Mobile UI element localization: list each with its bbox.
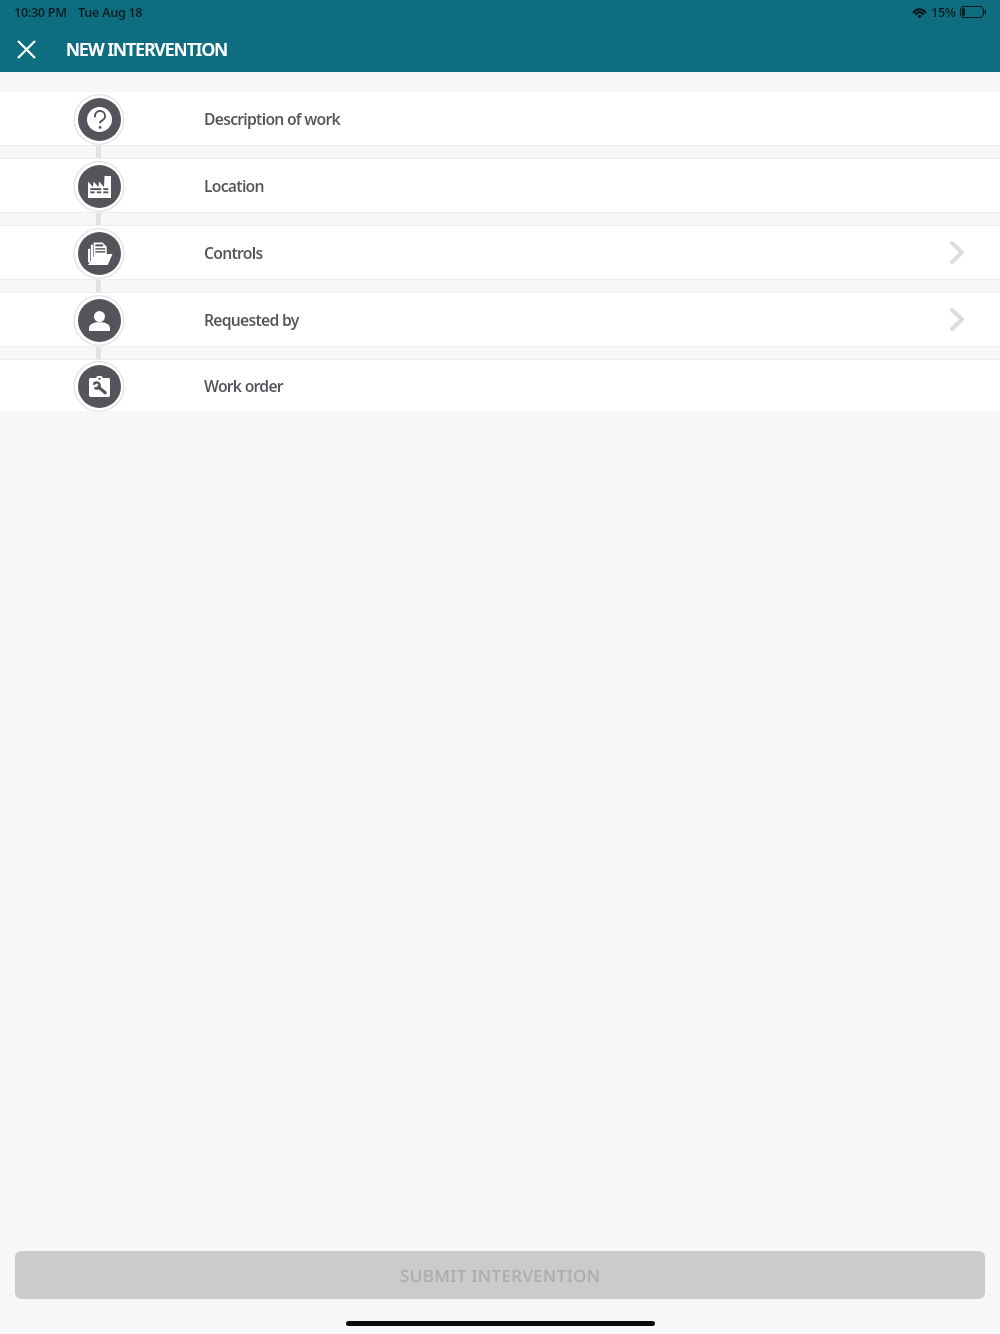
button[interactable]: Controls (0, 226, 1000, 279)
button[interactable]: Requested by (0, 293, 1000, 346)
staticText: 10:30 PM (14, 3, 67, 20)
button[interactable]: Location (0, 159, 1000, 212)
staticText: Requested by (204, 309, 299, 330)
button[interactable]: Description of work (0, 92, 1000, 145)
other: Open Controls (950, 241, 964, 264)
staticText: Controls (204, 242, 263, 263)
button[interactable]: SUBMIT INTERVENTION (15, 1251, 985, 1299)
staticText: NEW INTERVENTION (66, 37, 228, 61)
button[interactable]: Close (3, 26, 50, 72)
staticText: SUBMIT INTERVENTION (400, 1264, 601, 1287)
staticText: 15% (931, 3, 956, 20)
button[interactable]: Work order (0, 360, 1000, 411)
staticText: Work order (204, 375, 283, 396)
other: Open Requested by (950, 308, 964, 331)
staticText: Location (204, 175, 264, 196)
staticText: Tue Aug 18 (78, 3, 143, 20)
staticText: Description of work (204, 108, 340, 129)
